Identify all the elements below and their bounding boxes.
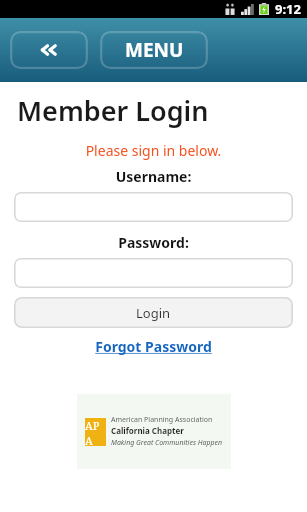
staticText: Username: xyxy=(0,167,307,186)
staticText: California Chapter xyxy=(111,425,184,436)
button[interactable] xyxy=(14,192,293,222)
staticText: American Planning Association xyxy=(111,415,213,425)
staticText: APA xyxy=(85,418,106,446)
staticText: Password: xyxy=(0,233,307,252)
staticText: Making Great Communities Happen xyxy=(111,438,223,448)
button[interactable]: Forgot Password xyxy=(0,337,307,356)
staticText: MENU xyxy=(125,37,184,63)
button[interactable]: Login xyxy=(14,297,293,328)
staticText: 9:12 xyxy=(275,0,301,18)
button[interactable] xyxy=(14,258,293,288)
staticText: Login xyxy=(136,304,171,322)
button[interactable]: Back xyxy=(10,31,88,69)
staticText: Please sign in below. xyxy=(0,141,307,160)
staticText: Member Login xyxy=(17,92,209,129)
button[interactable]: MENU xyxy=(100,31,208,69)
